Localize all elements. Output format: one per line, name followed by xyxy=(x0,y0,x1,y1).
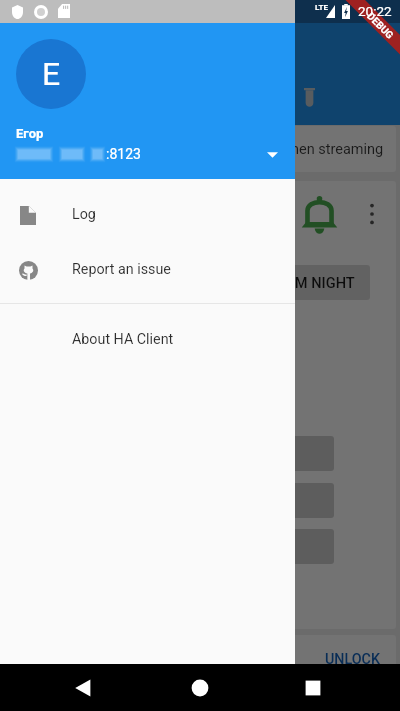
button[interactable] xyxy=(262,436,334,471)
button[interactable]: Log xyxy=(0,187,295,242)
staticText: Kitchen streaming xyxy=(266,141,384,158)
button[interactable] xyxy=(262,529,334,564)
button[interactable]: :8123 xyxy=(0,145,295,163)
button[interactable]: UNLOCK xyxy=(317,643,388,676)
button[interactable]: Developer tools xyxy=(304,88,315,108)
staticText: UNLOCK xyxy=(325,651,380,668)
staticText: About HA Client xyxy=(72,331,174,348)
button[interactable]: More options xyxy=(366,202,378,226)
button[interactable]: Home xyxy=(190,678,210,698)
button[interactable]: Back xyxy=(74,678,94,698)
button[interactable]: About HA Client xyxy=(0,312,295,367)
button[interactable]: Kitchen streaming xyxy=(4,126,396,172)
staticText: Log xyxy=(72,206,96,223)
staticText: Егор xyxy=(16,126,44,141)
staticText: E xyxy=(42,55,61,93)
staticText: LTE xyxy=(315,3,328,12)
staticText: :8123 xyxy=(106,146,141,162)
button[interactable] xyxy=(262,483,334,518)
staticText: ARM NIGHT xyxy=(276,274,355,291)
staticText: Report an issue xyxy=(72,261,171,278)
button[interactable]: E xyxy=(16,39,86,109)
staticText: DEBUG xyxy=(364,10,395,41)
button[interactable]: Recent apps xyxy=(303,678,323,698)
staticText: 20:22 xyxy=(358,3,392,19)
button[interactable]: ARM NIGHT xyxy=(260,265,370,300)
button[interactable]: Report an issue xyxy=(0,242,295,297)
